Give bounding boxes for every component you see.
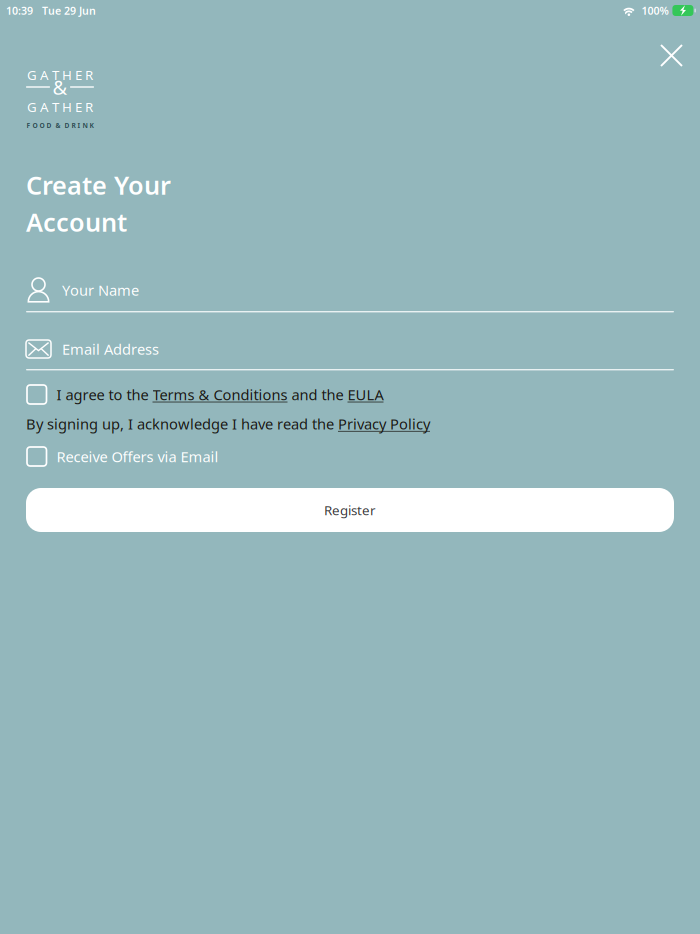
button[interactable]: Receive Offers via Email: [27, 446, 218, 467]
staticText: Receive Offers via Email: [56, 447, 218, 466]
staticText: G A T H E R: [27, 98, 93, 116]
staticText: By signing up, I acknowledge I have read…: [26, 414, 430, 433]
staticText: Tue 29 Jun: [42, 3, 96, 18]
staticText: Create Your: [26, 168, 171, 202]
staticText: Your Name: [62, 280, 139, 300]
staticText: Account: [26, 205, 127, 239]
staticText: G A T H E R: [27, 66, 93, 84]
button[interactable]: Email Address: [26, 336, 674, 370]
button[interactable]: Close: [650, 34, 693, 77]
staticText: I agree to the Terms & Conditions and th…: [56, 385, 383, 404]
staticText: &: [52, 74, 67, 100]
button[interactable]: Register: [26, 488, 674, 532]
staticText: Register: [324, 501, 376, 519]
button[interactable]: Your Name: [26, 277, 674, 312]
button[interactable]: I agree to the Terms & Conditions and th…: [27, 384, 383, 405]
staticText: F O O D & D R I N K: [26, 121, 93, 130]
staticText: Email Address: [62, 339, 159, 359]
staticText: 100%: [641, 3, 668, 18]
staticText: 10:39: [6, 3, 33, 18]
